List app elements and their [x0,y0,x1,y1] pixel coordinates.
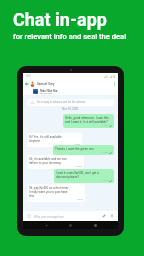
button[interactable]: Ok, it's available and we can deliver to… [27,155,84,169]
staticText: Chat in-app [13,9,107,30]
staticText: Thanks, I want the green one. [55,147,95,151]
staticText: Ok, pay Rp400 as a first timer. I really… [29,186,70,198]
other: Warning [31,101,34,104]
staticText: Hello, good afternoon. I saw this and I … [65,116,109,124]
button[interactable]: Warning [27,99,114,106]
button[interactable]: Thanks, I want the green one. [53,145,114,155]
staticText: 14:04 [74,143,80,146]
staticText: Nike Nike Nia [40,89,58,92]
staticText: 14:12 [77,198,83,201]
button[interactable]: Hello, good afternoon. I saw this and I … [63,114,114,128]
button[interactable]: Ok, pay Rp400 as a first timer. I really… [27,184,85,202]
staticText: Samuel Grey [37,82,55,86]
staticText: for relevant info and seal the deal [13,32,127,41]
staticText: 14:05 [102,151,108,154]
button[interactable]: Nike Nike Nia [23,88,118,95]
staticText: Write your message here [34,215,64,218]
button[interactable]: Attach [102,214,106,218]
button[interactable]: Back [45,224,48,227]
button[interactable]: Hi! Yes, it's still available. Anytime [27,133,82,147]
staticText: I saw it costs Rp500, can I get a discou… [56,171,99,179]
staticText: 9:41 [26,75,32,78]
button[interactable]: Recent apps [94,224,97,227]
button[interactable]: Back [23,79,118,88]
staticText: Hi! Yes, it's still available. Anytime [29,135,63,143]
button[interactable]: Voice message [110,214,114,218]
other: Back [25,82,29,86]
staticText: Do not pay in advance and for the intere… [37,101,85,104]
staticText: Ok, it's available and we can deliver to… [29,157,67,165]
staticText: Nov 10, 2021 [23,107,118,110]
staticText: Rp 100.000 [40,92,53,95]
staticText: 14:10 [102,179,108,182]
button[interactable]: I saw it costs Rp500, can I get a discou… [54,169,114,183]
button[interactable]: Emoji [27,214,31,218]
staticText: 14:07 [76,165,82,168]
button[interactable]: Home [69,224,72,227]
staticText: 14:02 [102,124,108,127]
